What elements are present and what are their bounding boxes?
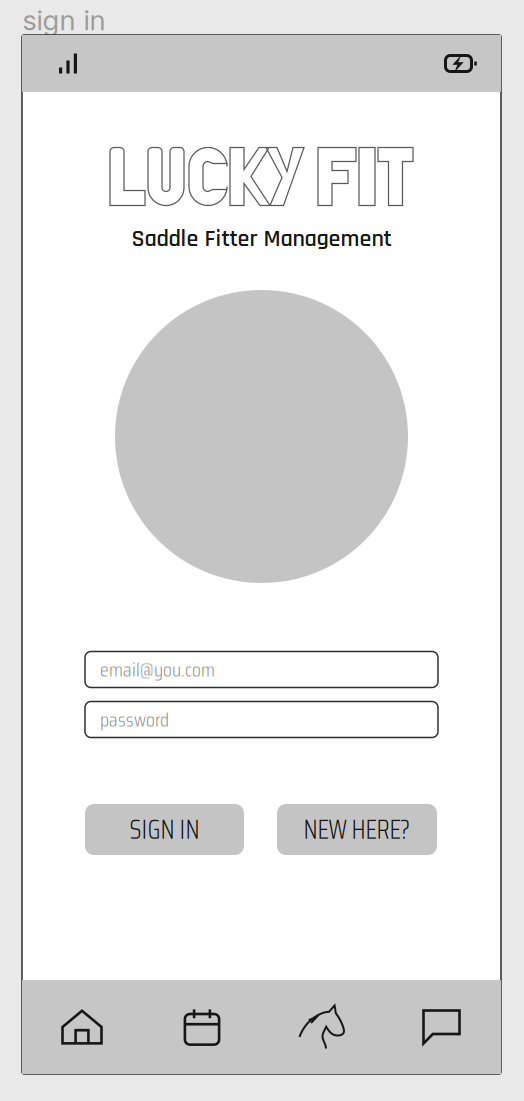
button[interactable]: password [85,701,438,737]
staticText: NEW HERE? [303,808,410,850]
staticText: email@you.com [100,654,215,685]
button[interactable]: email@you.com [85,651,438,687]
staticText: SIGN IN [129,808,199,850]
button[interactable]: SIGN IN [85,804,244,855]
staticText: password [100,704,169,735]
staticText: sign in [22,3,105,37]
button[interactable]: NEW HERE? [277,804,437,855]
button[interactable]: Calendar [142,980,262,1074]
staticText: Saddle Fitter Management [131,224,391,254]
button[interactable]: Home [22,980,142,1074]
button[interactable]: Horses [262,980,382,1074]
button[interactable]: Messages [382,980,501,1074]
